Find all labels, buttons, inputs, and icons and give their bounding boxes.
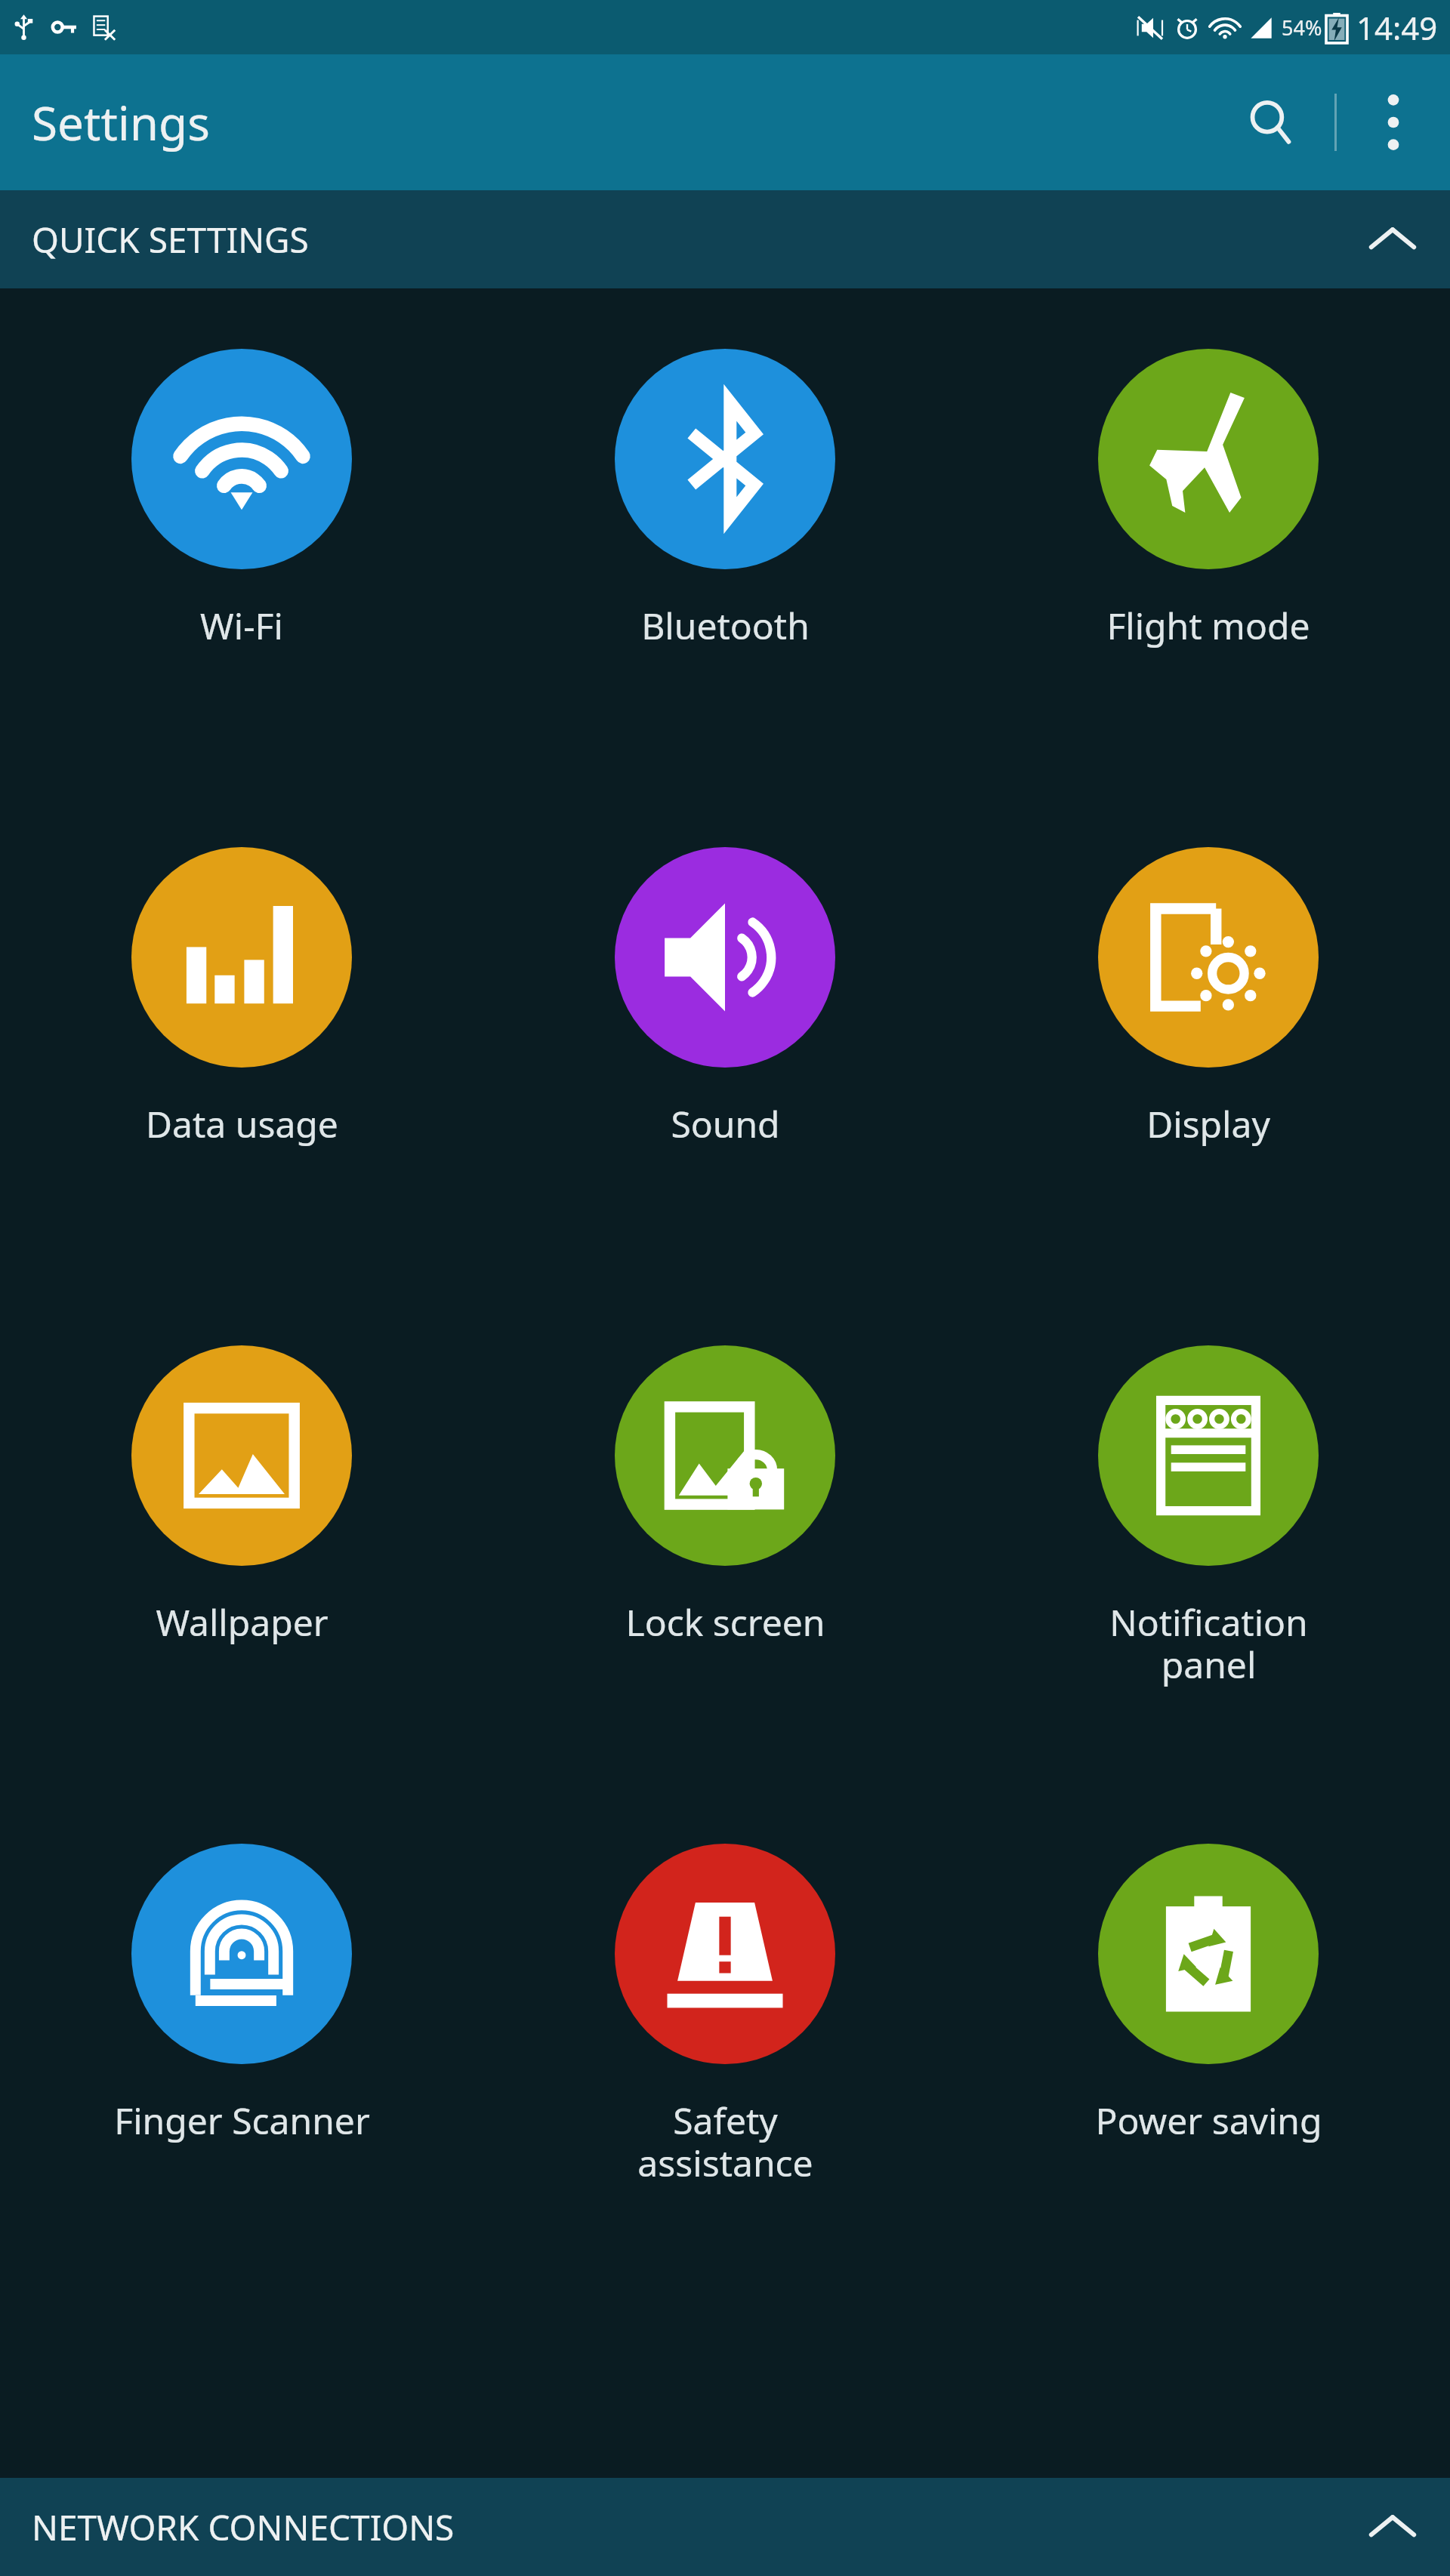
button[interactable]: Safety assistance [483, 1797, 967, 2295]
staticText: Bluetooth [641, 601, 810, 650]
button[interactable]: Bluetooth [483, 302, 967, 800]
button[interactable]: Collapse QUICK SETTINGS [1352, 190, 1433, 288]
button[interactable]: Flight mode [967, 302, 1450, 800]
button[interactable]: Data usage [0, 800, 483, 1299]
staticText: Wi-Fi [200, 601, 283, 650]
button[interactable]: More options [1337, 54, 1450, 190]
staticText: Settings [32, 91, 210, 154]
button[interactable]: Lock screen [483, 1299, 967, 1797]
button[interactable]: NETWORK CONNECTIONS [0, 2478, 1450, 2576]
button[interactable]: Wi-Fi [0, 302, 483, 800]
staticText: Lock screen [625, 1598, 825, 1647]
staticText: Wallpaper [156, 1598, 329, 1647]
button[interactable]: QUICK SETTINGS [0, 190, 1450, 288]
staticText: NETWORK CONNECTIONS [32, 2504, 1352, 2551]
staticText: Safety assistance [637, 2096, 813, 2187]
staticText: Power saving [1095, 2096, 1322, 2145]
button[interactable]: Finger Scanner [0, 1797, 483, 2295]
button[interactable]: Power saving [967, 1797, 1450, 2295]
staticText: Display [1146, 1099, 1270, 1148]
button[interactable]: Display [967, 800, 1450, 1299]
staticText: Finger Scanner [114, 2096, 370, 2145]
button[interactable]: Notification panel [967, 1299, 1450, 1797]
staticText: QUICK SETTINGS [32, 216, 1352, 263]
staticText: 54% [1282, 14, 1322, 42]
button[interactable]: Sound [483, 800, 967, 1299]
staticText: Notification panel [1109, 1598, 1308, 1689]
staticText: Data usage [146, 1099, 338, 1148]
staticText: Sound [671, 1099, 780, 1148]
staticText: 14:49 [1356, 6, 1438, 49]
staticText: Flight mode [1106, 601, 1310, 650]
button[interactable]: Collapse NETWORK CONNECTIONS [1352, 2478, 1433, 2576]
button[interactable]: Wallpaper [0, 1299, 483, 1797]
button[interactable]: Search [1206, 54, 1334, 190]
